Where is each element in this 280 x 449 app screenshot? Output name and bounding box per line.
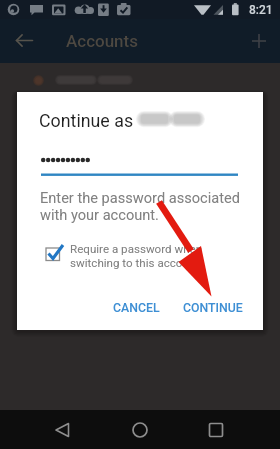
button[interactable]: Recent apps	[199, 413, 233, 447]
button[interactable]: Back	[46, 413, 80, 447]
button[interactable]: CONTINUE	[175, 295, 251, 321]
staticText: 8:21	[249, 3, 273, 17]
staticText: Continue as	[39, 110, 134, 131]
staticText: Enter the password associated	[40, 189, 240, 206]
button[interactable]: CANCEL	[105, 295, 168, 321]
staticText: with your account.	[40, 206, 159, 223]
staticText: CONTINUE	[183, 301, 243, 315]
staticText: CANCEL	[113, 301, 160, 315]
staticText: Accounts	[66, 31, 138, 51]
staticText: Require a password when	[70, 242, 203, 256]
button[interactable]: Add account	[248, 30, 270, 52]
button[interactable]: Home	[123, 413, 157, 447]
staticText: switching to this account.	[70, 256, 203, 270]
button[interactable]: Navigate up	[14, 30, 35, 51]
button[interactable]: Require a password when	[39, 240, 239, 268]
